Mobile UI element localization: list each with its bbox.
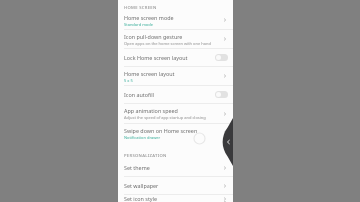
button[interactable]: Icon pull-down gesture	[118, 30, 233, 48]
button[interactable]: Home screen layout	[118, 67, 233, 85]
button[interactable]: App animation speed	[118, 104, 233, 123]
staticText: Open apps on the home screen with one ha…	[124, 41, 211, 46]
staticText: Icon pull-down gesture	[124, 33, 183, 40]
staticText: Set wallpaper	[124, 182, 159, 189]
button[interactable]: Icon autofill	[118, 86, 233, 103]
button[interactable]: Set icon style	[118, 195, 233, 202]
staticText: Standard mode	[124, 22, 154, 27]
staticText: Adjust the speed of app startup and clos…	[124, 115, 222, 120]
staticText: Set icon style	[124, 195, 158, 202]
button[interactable]: Lock Home screen layout	[118, 49, 233, 66]
staticText: Home screen layout	[124, 70, 175, 77]
staticText: PERSONALIZATION	[124, 153, 167, 159]
button[interactable]: Open side panel	[221, 118, 233, 166]
staticText: App animation speed	[124, 107, 178, 114]
staticText: Set theme	[124, 164, 150, 171]
button[interactable]: Set wallpaper	[118, 177, 233, 194]
button[interactable]: Swipe down on Home screen	[118, 124, 233, 142]
staticText: Notification drawer	[124, 135, 161, 140]
staticText: Icon autofill	[124, 91, 154, 98]
staticText: Swipe down on Home screen	[124, 127, 198, 134]
staticText: Lock Home screen layout	[124, 54, 188, 61]
staticText: HOME SCREEN	[124, 5, 157, 11]
staticText: 5 x 5	[124, 78, 133, 83]
staticText: Home screen mode	[124, 14, 174, 21]
button[interactable]: Home screen mode	[118, 11, 233, 29]
button[interactable]: Set theme	[118, 159, 233, 176]
